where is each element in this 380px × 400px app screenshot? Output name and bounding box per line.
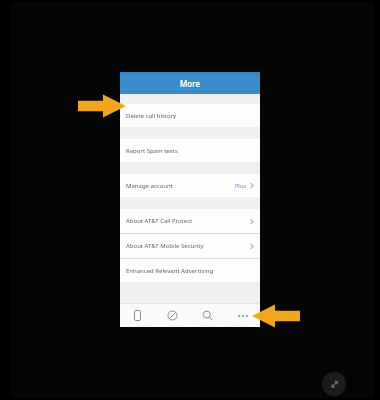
staticText: More <box>180 78 201 89</box>
button[interactable]: Expand <box>322 372 346 396</box>
staticText: Enhanced Relevant Advertising <box>126 267 254 275</box>
staticText: Plus <box>235 182 246 189</box>
staticText: Delete call history <box>126 112 254 120</box>
button[interactable]: Manage account <box>120 174 260 197</box>
staticText: About AT&T Call Protect <box>126 217 250 225</box>
button[interactable]: About AT&T Mobile Security <box>120 234 260 258</box>
button[interactable]: Search <box>190 304 225 327</box>
staticText: About AT&T Mobile Security <box>126 242 250 250</box>
staticText: Manage account <box>126 182 235 190</box>
button[interactable]: More <box>225 304 260 327</box>
button[interactable]: Blocked <box>155 304 190 327</box>
button[interactable]: Enhanced Relevant Advertising <box>120 259 260 282</box>
button[interactable]: Delete call history <box>120 104 260 127</box>
button[interactable]: About AT&T Call Protect <box>120 209 260 233</box>
button[interactable]: Device <box>120 304 155 327</box>
button[interactable]: Report Spam texts <box>120 139 260 162</box>
staticText: Report Spam texts <box>126 147 254 155</box>
